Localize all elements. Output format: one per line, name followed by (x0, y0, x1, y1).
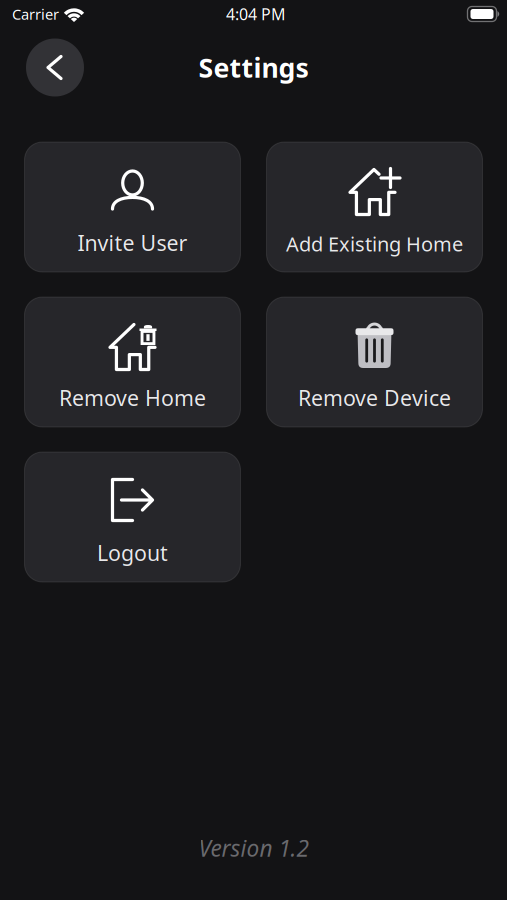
staticText: Version 1.2 (198, 833, 308, 863)
staticText: Carrier (12, 4, 59, 24)
staticText: Add Existing Home (286, 230, 463, 257)
button[interactable]: Invite User (24, 142, 240, 272)
button[interactable]: Back (26, 38, 84, 96)
button[interactable]: Add Existing Home (266, 142, 482, 272)
staticText: Remove Home (59, 384, 206, 412)
staticText: Settings (198, 50, 308, 85)
button[interactable]: Remove Home (24, 297, 240, 427)
staticText: Remove Device (298, 384, 451, 412)
staticText: Invite User (77, 229, 187, 257)
staticText: 4:04 PM (226, 3, 286, 25)
button[interactable]: Remove Device (266, 297, 482, 427)
staticText: Logout (97, 539, 168, 567)
button[interactable]: Logout (24, 452, 240, 582)
